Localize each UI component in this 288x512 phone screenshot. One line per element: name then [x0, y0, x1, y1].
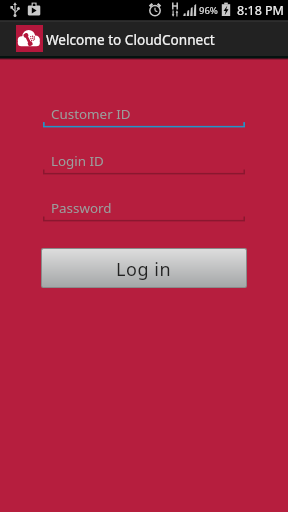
- staticText: Password: [51, 199, 112, 217]
- staticText: Login ID: [51, 152, 104, 170]
- button[interactable]: Customer ID: [43, 100, 245, 130]
- button[interactable]: Password: [43, 194, 245, 224]
- staticText: 96%: [199, 4, 218, 17]
- staticText: 8:18 PM: [237, 2, 284, 19]
- staticText: Welcome to CloudConnect: [46, 30, 215, 49]
- staticText: Customer ID: [51, 105, 131, 123]
- staticText: Log in: [116, 257, 172, 282]
- other: CloudConnect: [16, 25, 43, 52]
- button[interactable]: Login ID: [43, 147, 245, 177]
- button[interactable]: Log in: [42, 249, 246, 287]
